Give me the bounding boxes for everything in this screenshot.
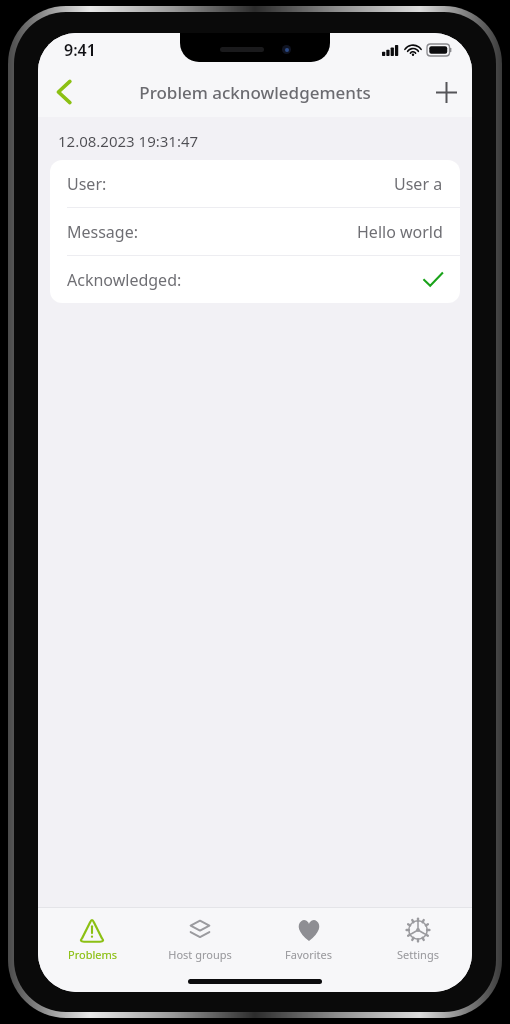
staticText: Settings	[397, 947, 439, 962]
button[interactable]: Host groups	[146, 908, 254, 970]
staticText: Problem acknowledgements	[139, 81, 371, 104]
button[interactable]: Message:	[50, 208, 460, 256]
staticText: User:	[67, 173, 107, 195]
staticText: 9:41	[64, 39, 96, 61]
button[interactable]: Settings	[363, 908, 472, 970]
staticText: Hello world	[357, 221, 443, 243]
button[interactable]: Back	[38, 67, 90, 117]
staticText: Favorites	[285, 947, 332, 962]
button[interactable]: Add	[420, 67, 472, 117]
button[interactable]: Favorites	[254, 908, 363, 970]
button[interactable]: Acknowledged:	[50, 256, 460, 303]
staticText: Host groups	[168, 947, 232, 962]
staticText: 12.08.2023 19:31:47	[58, 131, 199, 151]
staticText: User a	[394, 173, 443, 195]
staticText: Problems	[68, 947, 117, 962]
staticText: Acknowledged:	[67, 269, 182, 291]
button[interactable]: User:	[50, 160, 460, 208]
staticText: Message:	[67, 221, 138, 243]
button[interactable]: Problems	[38, 908, 146, 970]
